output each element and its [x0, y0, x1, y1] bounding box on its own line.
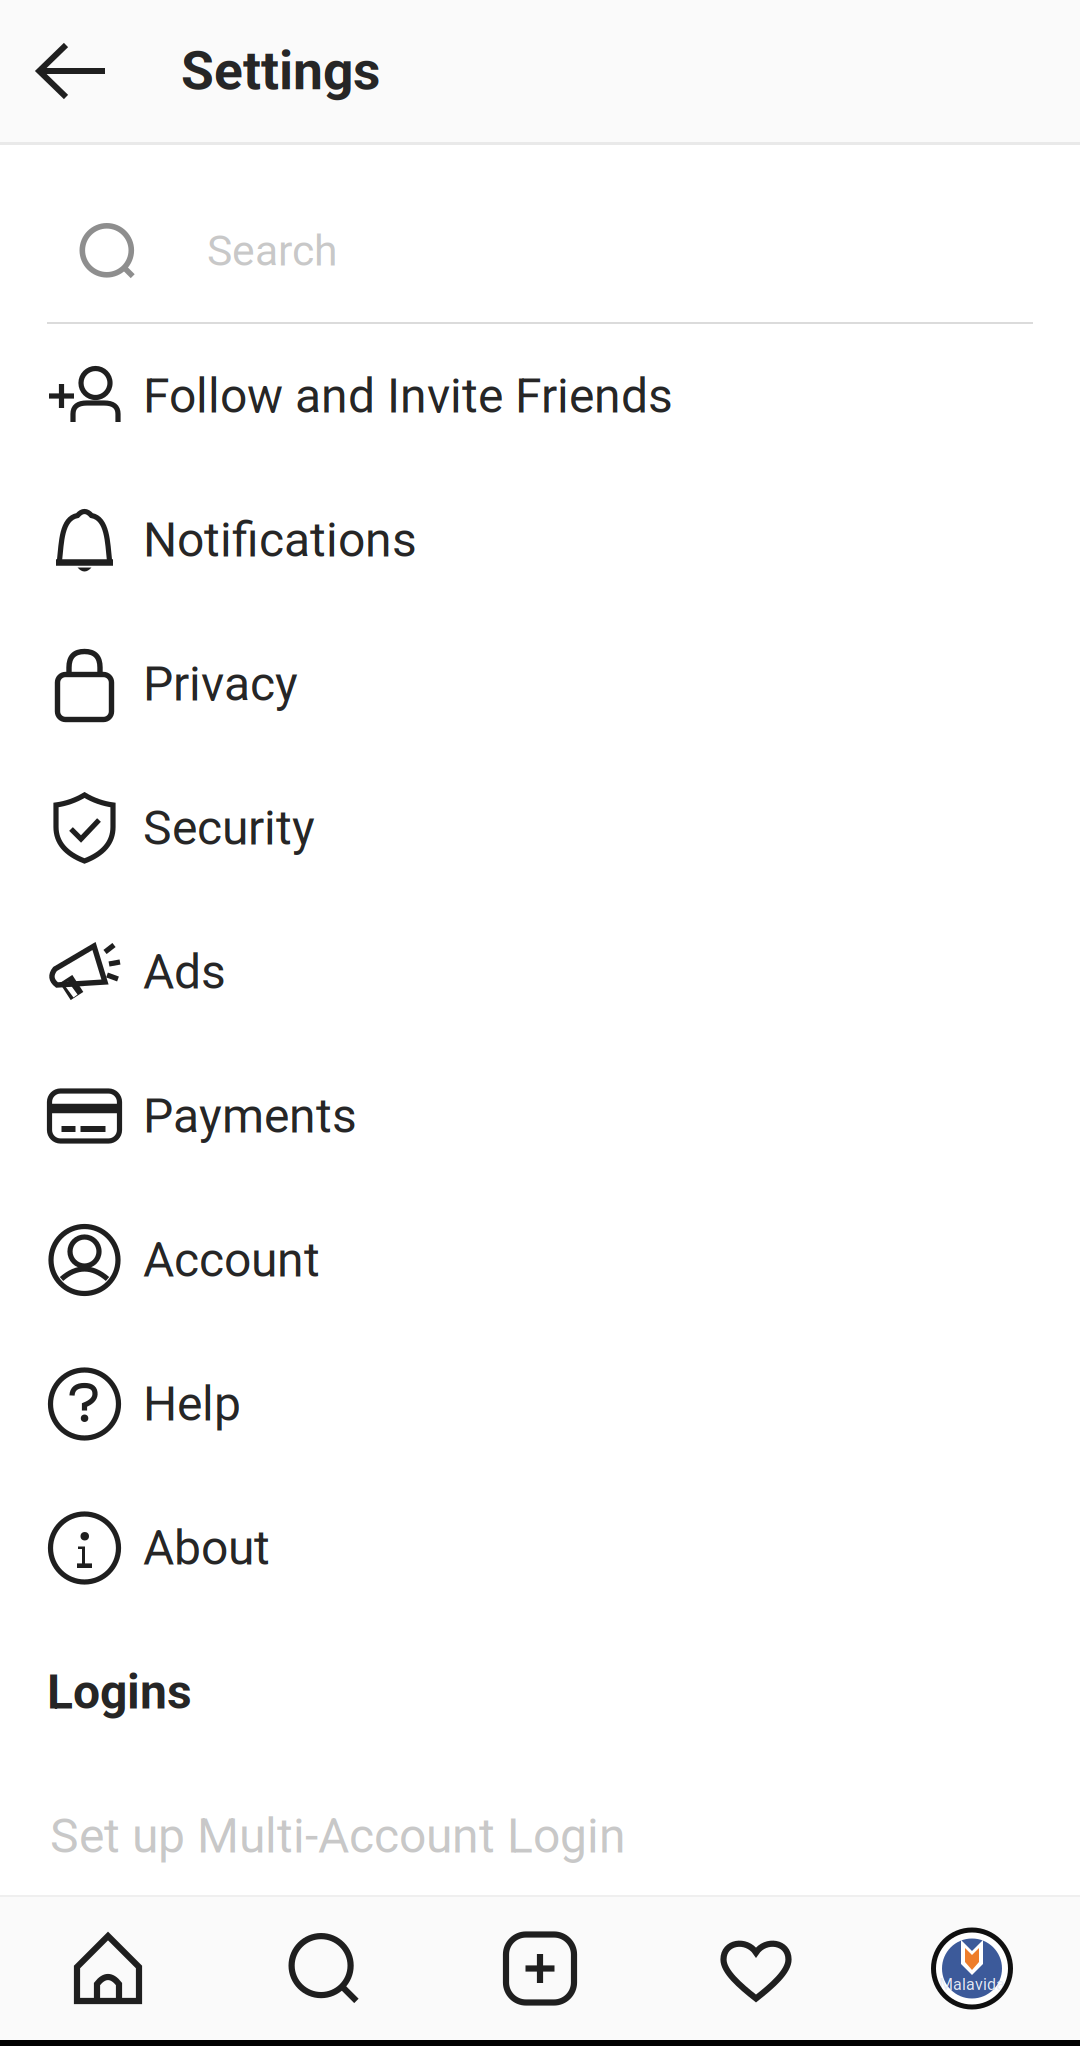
staticText: Follow and Invite Friends: [143, 368, 673, 424]
staticText: Security: [143, 800, 315, 856]
staticText: Notifications: [143, 512, 417, 568]
staticText: Payments: [143, 1088, 357, 1144]
button[interactable]: Follow and Invite Friends: [0, 324, 1080, 468]
button[interactable]: Account: [0, 1188, 1080, 1332]
button[interactable]: About: [0, 1476, 1080, 1620]
staticText: Account: [143, 1232, 320, 1288]
button[interactable]: New post: [432, 1897, 648, 2040]
staticText: About: [143, 1520, 270, 1576]
button[interactable]: Back: [0, 0, 144, 142]
staticText: Help: [143, 1376, 241, 1432]
staticText: Set up Multi-Account Login: [50, 1808, 626, 1864]
button[interactable]: Search: [0, 145, 1080, 324]
staticText: Search: [207, 226, 338, 276]
staticText: Settings: [181, 40, 380, 102]
button[interactable]: Activity: [648, 1897, 864, 2040]
button[interactable]: Profile: [864, 1897, 1080, 2040]
button[interactable]: Payments: [0, 1044, 1080, 1188]
button[interactable]: Notifications: [0, 468, 1080, 612]
button[interactable]: Home: [0, 1897, 216, 2040]
button[interactable]: Security: [0, 756, 1080, 900]
button[interactable]: Ads: [0, 900, 1080, 1044]
staticText: Ads: [143, 944, 226, 1000]
staticText: Malavida: [939, 1975, 1005, 1994]
button[interactable]: Privacy: [0, 612, 1080, 756]
button[interactable]: Set up Multi-Account Login: [0, 1764, 1080, 1908]
staticText: Logins: [47, 1664, 192, 1720]
button[interactable]: Help: [0, 1332, 1080, 1476]
staticText: Privacy: [143, 656, 298, 712]
button[interactable]: Search: [216, 1897, 432, 2040]
